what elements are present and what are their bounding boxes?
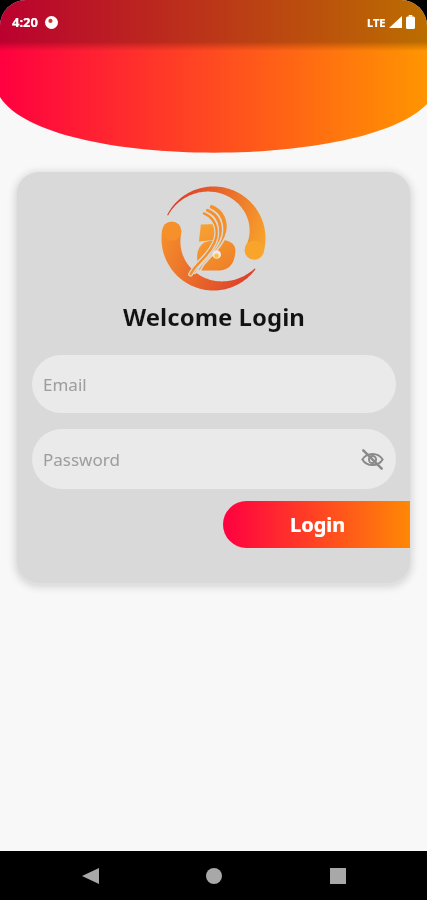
staticText: 4:20 bbox=[12, 13, 38, 31]
staticText: Email bbox=[43, 373, 87, 396]
staticText: LTE bbox=[367, 15, 386, 30]
button[interactable]: Email bbox=[32, 355, 396, 413]
button[interactable]: Back bbox=[59, 851, 121, 900]
button[interactable]: Show password bbox=[358, 445, 386, 473]
button[interactable]: Home bbox=[183, 851, 245, 900]
button[interactable]: Password bbox=[32, 429, 396, 489]
staticText: Welcome Login bbox=[123, 300, 305, 333]
button[interactable]: Recent apps bbox=[307, 851, 369, 900]
button[interactable]: Login bbox=[223, 501, 410, 548]
staticText: Password bbox=[43, 448, 120, 471]
staticText: Login bbox=[290, 511, 346, 538]
